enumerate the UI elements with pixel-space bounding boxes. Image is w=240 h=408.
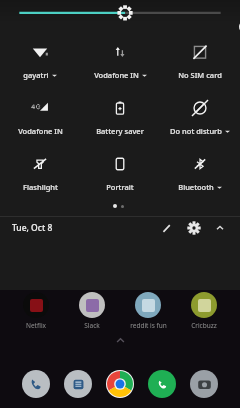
staticText: gayatri <box>23 70 49 80</box>
button[interactable]: Battery saver <box>80 94 160 138</box>
staticText: Vodafone IN <box>18 126 63 136</box>
button[interactable]: Slack <box>66 292 118 330</box>
button[interactable]: Flashlight <box>0 150 80 194</box>
button[interactable]: App <box>190 370 218 398</box>
staticText: Do not disturb <box>170 126 222 136</box>
staticText: Tue, Oct 8 <box>12 222 53 234</box>
button[interactable]: reddit is fun <box>122 292 174 330</box>
staticText: Flashlight <box>23 182 58 192</box>
button[interactable]: Settings <box>184 218 204 238</box>
button[interactable]: App <box>64 370 92 398</box>
button[interactable]: Edit <box>156 218 176 238</box>
staticText: No SIM card <box>178 70 222 80</box>
button[interactable]: Collapse <box>210 218 230 238</box>
button[interactable]: Bluetooth <box>160 150 240 194</box>
button[interactable]: App <box>148 370 176 398</box>
button[interactable]: SIM <box>160 38 240 82</box>
button[interactable]: Netflix <box>10 292 62 330</box>
staticText: Portrait <box>106 182 134 192</box>
button[interactable]: Do not disturb <box>160 94 240 138</box>
staticText: Cricbuzz <box>191 321 217 330</box>
staticText: reddit is fun <box>130 321 167 330</box>
button[interactable]: Brightness <box>0 0 240 28</box>
button[interactable]: Signal <box>0 94 80 138</box>
button[interactable]: Cricbuzz <box>178 292 230 330</box>
staticText: Netflix <box>26 321 46 330</box>
button[interactable]: Mobile data <box>80 38 160 82</box>
staticText: Slack <box>84 321 100 330</box>
button[interactable]: Auto-rotate <box>80 150 160 194</box>
button[interactable]: App <box>22 370 50 398</box>
staticText: Battery saver <box>96 126 144 136</box>
button[interactable]: Wi-Fi <box>0 38 80 82</box>
staticText: Bluetooth <box>178 182 214 192</box>
button[interactable]: App <box>106 370 134 398</box>
staticText: Vodafone IN <box>94 70 139 80</box>
